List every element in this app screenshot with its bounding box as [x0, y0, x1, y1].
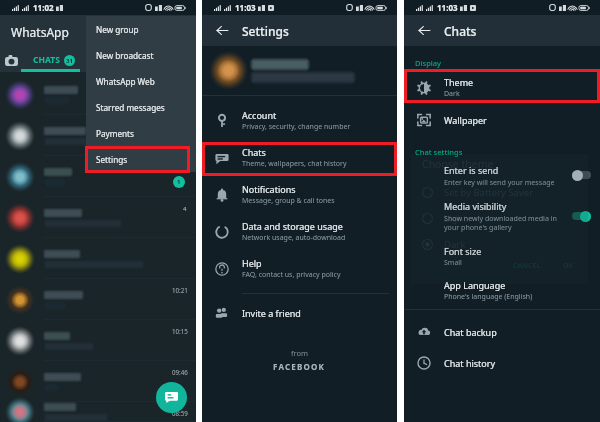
staticText: CHATS [33, 54, 60, 66]
staticText: 11:03 [235, 2, 256, 13]
staticText: Show newly downloaded media in your phon… [444, 213, 572, 232]
button[interactable]: WhatsApp Web [86, 68, 196, 94]
staticText: Starred messages [96, 102, 165, 113]
staticText: App Language [444, 279, 506, 291]
button[interactable]: Chat history [404, 347, 600, 378]
staticText: Chats [242, 146, 266, 158]
staticText: 09:46 [172, 368, 188, 376]
staticText: New group [96, 24, 139, 35]
staticText: Display [415, 58, 442, 68]
staticText: Dark [444, 89, 460, 99]
staticText: WhatsApp Web [96, 76, 155, 87]
button[interactable]: Account [202, 102, 397, 139]
staticText: Privacy, security, change number [242, 122, 351, 132]
button[interactable] [202, 46, 397, 95]
staticText: Message, group & call tones [242, 196, 335, 206]
staticText: 11:03 [437, 2, 458, 13]
staticText: Help [242, 257, 262, 269]
button[interactable]: New chat [156, 382, 187, 413]
button[interactable]: Set by Battery Saver [422, 179, 588, 205]
staticText: Invite a friend [242, 307, 301, 319]
staticText: Chat history [444, 357, 496, 369]
button[interactable]: Enter is send [404, 157, 600, 193]
button[interactable]: CHATS [14, 48, 94, 72]
button[interactable]: Invite a friend [202, 297, 397, 329]
button[interactable]: Settings [86, 146, 196, 172]
staticText: 4 [183, 205, 187, 213]
button[interactable]: Chat backup [404, 316, 600, 347]
staticText: Light [444, 212, 467, 225]
staticText: Theme [444, 76, 474, 88]
button[interactable]: Dark [422, 231, 588, 257]
staticText: New broadcast [96, 50, 154, 61]
staticText: FACEBOOK [273, 361, 326, 372]
button[interactable]: Wallpaper [404, 106, 600, 134]
button[interactable]: 10:15 [0, 320, 196, 361]
button[interactable]: Data and storage usage [202, 213, 397, 250]
button[interactable]: Chats [202, 139, 397, 176]
staticText: Settings [96, 154, 128, 165]
staticText: Small [444, 258, 462, 268]
button[interactable]: Font size [404, 239, 600, 274]
staticText: Settings [242, 23, 289, 39]
staticText: 08:59 [172, 409, 188, 417]
button[interactable]: App Language [404, 274, 600, 307]
staticText: Payments [96, 128, 134, 139]
staticText: 10:21 [172, 286, 188, 294]
button[interactable]: New broadcast [86, 42, 196, 68]
staticText: Network usage, auto-download [242, 233, 346, 243]
button[interactable] [0, 156, 196, 197]
button[interactable]: Payments [86, 120, 196, 146]
button[interactable] [0, 74, 196, 115]
staticText: FAQ, contact us, privacy policy [242, 270, 341, 280]
staticText: from [291, 348, 309, 358]
button[interactable]: New group [86, 16, 196, 42]
button[interactable]: Starred messages [86, 94, 196, 120]
button[interactable]: 09:46 [0, 361, 196, 402]
staticText: Theme, wallpapers, chat history [242, 159, 347, 169]
staticText: CANCEL [513, 261, 541, 271]
staticText: Wallpaper [444, 114, 487, 126]
button[interactable] [0, 197, 196, 238]
button[interactable] [0, 115, 196, 156]
staticText: Notifications [242, 183, 296, 195]
button[interactable]: Theme [404, 72, 600, 103]
staticText: OK [563, 261, 574, 271]
staticText: Chat settings [415, 147, 463, 157]
staticText: 31 [66, 57, 73, 65]
button[interactable]: 10:21 [0, 279, 196, 320]
staticText: Chats [444, 23, 477, 39]
staticText: 11:02 [33, 2, 54, 13]
staticText: Chat backup [444, 326, 497, 338]
staticText: Data and storage usage [242, 220, 343, 232]
staticText: Dark [444, 238, 466, 251]
staticText: Media visibility [444, 200, 507, 212]
button[interactable]: Media visibility [404, 193, 600, 239]
staticText: Choose theme [422, 157, 494, 171]
staticText: Set by Battery Saver [444, 186, 534, 199]
button[interactable]: Back [404, 15, 444, 46]
button[interactable]: Help [202, 250, 397, 287]
button[interactable]: Camera [0, 48, 22, 72]
staticText: 1 [177, 178, 181, 186]
button[interactable]: Light [422, 205, 588, 231]
staticText: WhatsApp [11, 24, 69, 40]
staticText: 10:15 [172, 327, 188, 335]
button[interactable]: Back [202, 15, 242, 46]
staticText: Font size [444, 245, 482, 257]
staticText: Enter key will send your message [444, 177, 555, 187]
staticText: Account [242, 109, 277, 121]
button[interactable]: 08:59 [0, 402, 196, 422]
button[interactable]: Notifications [202, 176, 397, 213]
staticText: Phone's language (English) [444, 292, 533, 302]
button[interactable] [0, 238, 196, 279]
staticText: Enter is send [444, 164, 499, 176]
